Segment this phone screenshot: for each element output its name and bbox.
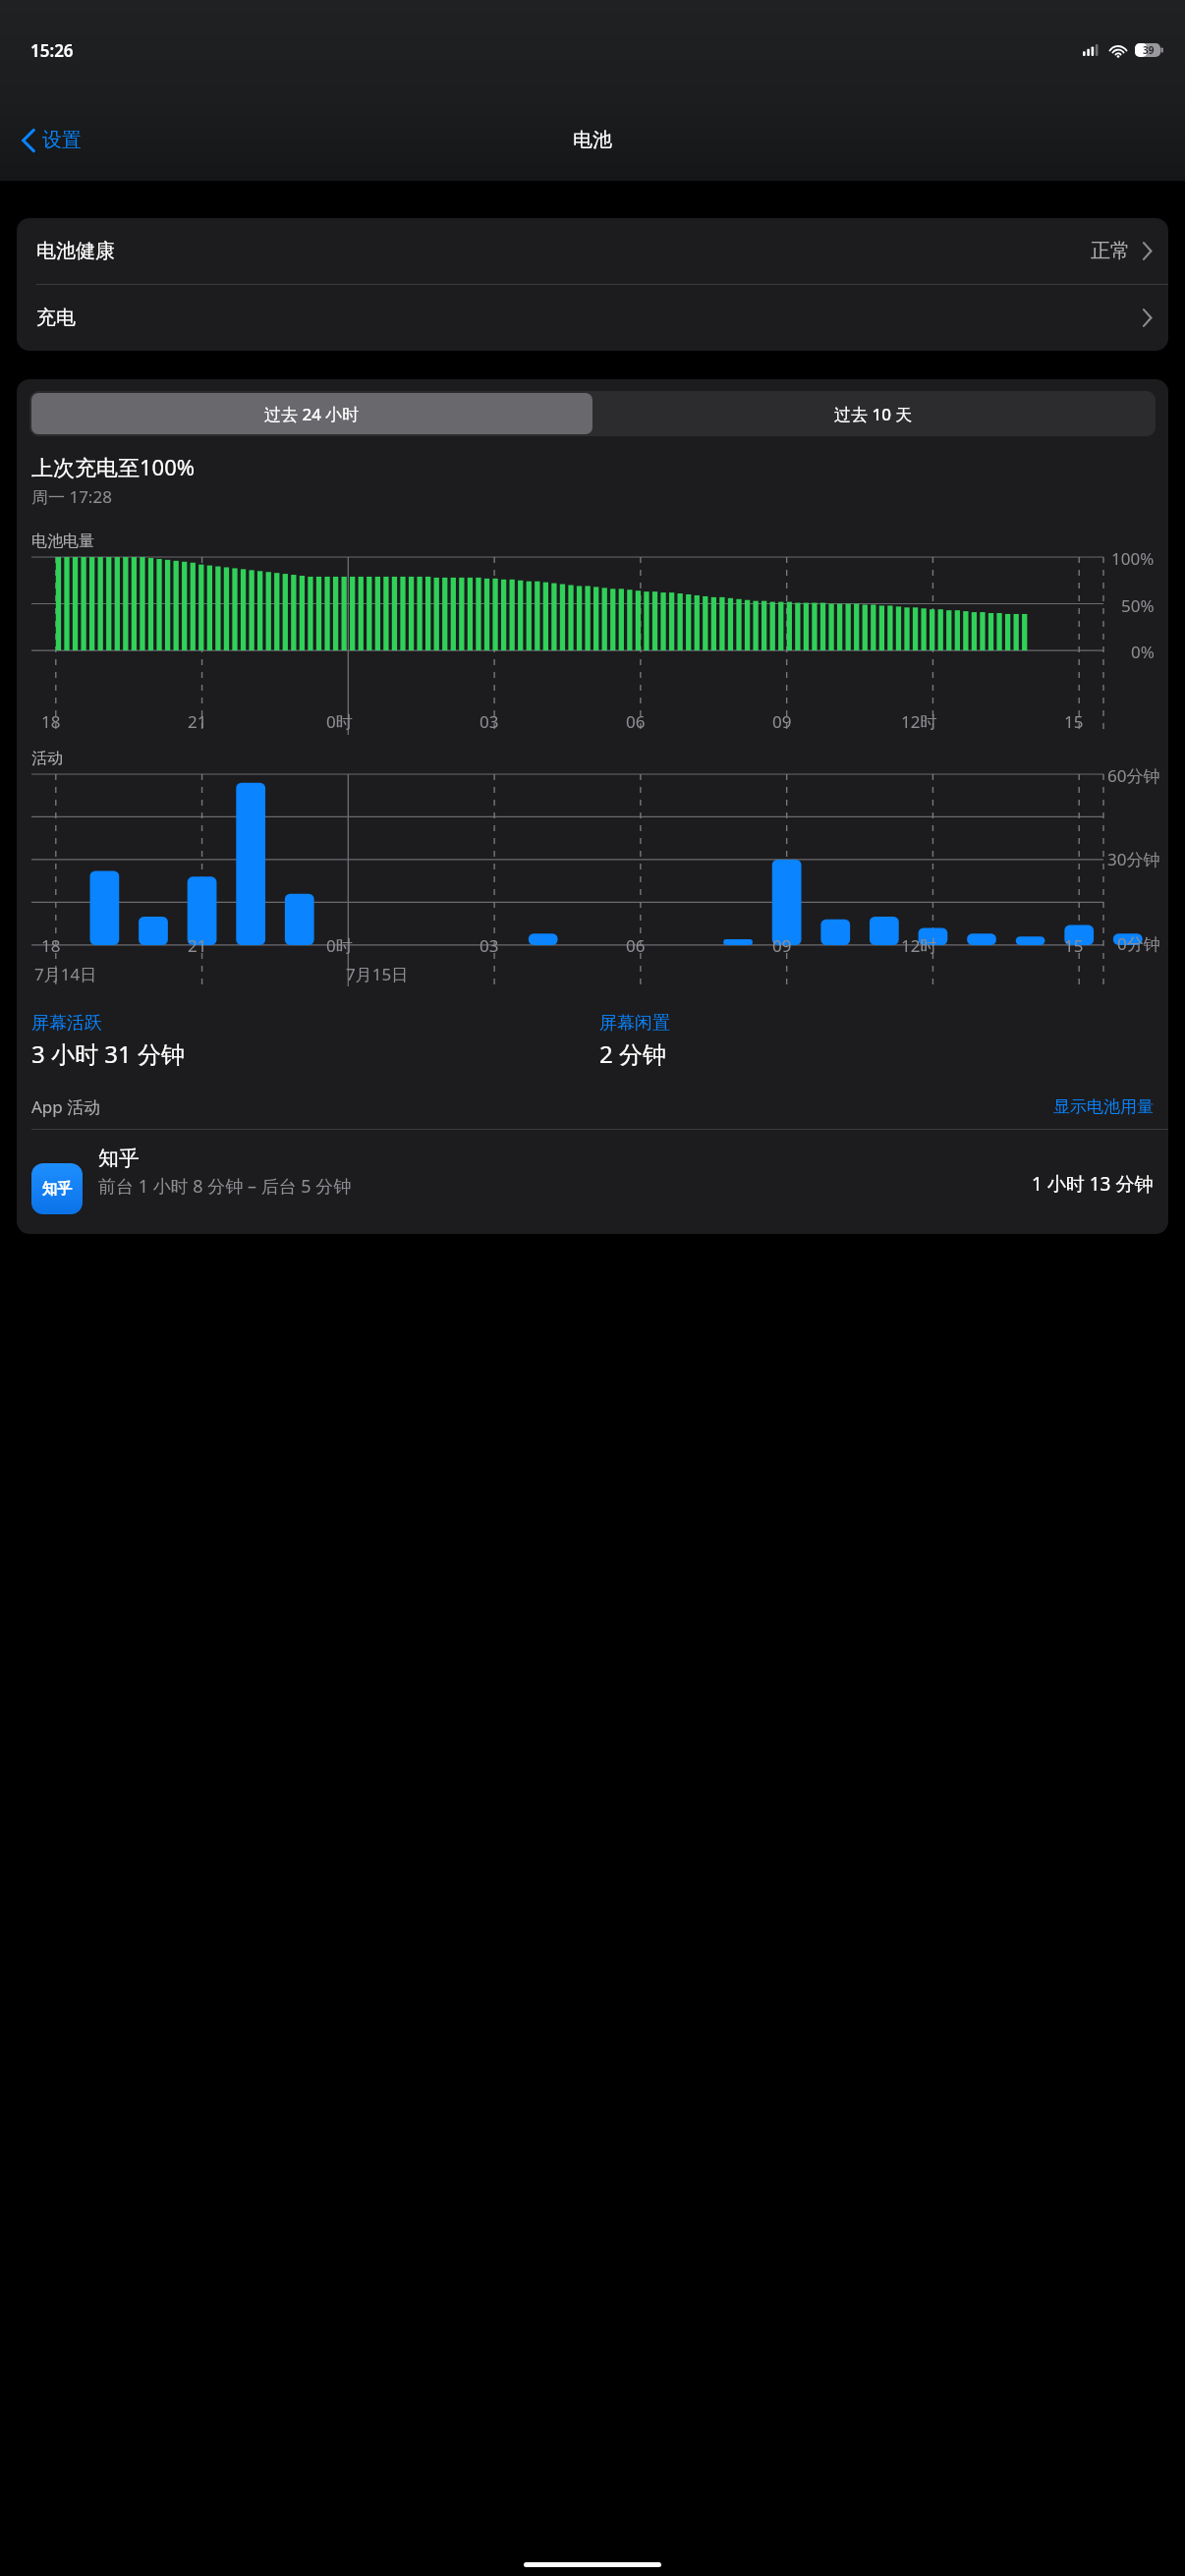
staticText: 3 小时 31 分钟: [31, 1037, 185, 1070]
staticText: 屏幕活跃: [31, 1012, 102, 1035]
staticText: 0%: [1131, 641, 1155, 663]
staticText: 知乎: [42, 1180, 72, 1199]
staticText: 前台 1 小时 8 分钟 – 后台 5 分钟: [98, 1174, 352, 1199]
staticText: 21: [188, 934, 207, 957]
staticText: 09: [772, 934, 792, 957]
staticText: 充电: [36, 306, 76, 330]
staticText: 06: [626, 934, 646, 957]
staticText: 过去 24 小时: [264, 403, 360, 425]
button[interactable]: 显示电池用量: [1053, 1096, 1154, 1117]
staticText: 电池健康: [36, 239, 115, 263]
staticText: 15: [1064, 710, 1084, 733]
staticText: 06: [626, 710, 646, 733]
staticText: 屏幕闲置: [599, 1012, 670, 1035]
staticText: 03: [480, 934, 499, 957]
staticText: 0时: [326, 710, 353, 733]
staticText: 7月14日: [34, 963, 97, 985]
button[interactable]: 过去 24 小时: [31, 393, 592, 434]
staticText: 0时: [326, 934, 353, 957]
staticText: 12时: [901, 934, 937, 957]
staticText: 过去 10 天: [834, 403, 913, 425]
staticText: 15:26: [30, 39, 74, 62]
staticText: 12时: [901, 710, 937, 733]
staticText: 21: [188, 710, 207, 733]
staticText: 50%: [1121, 594, 1155, 617]
staticText: 18: [41, 934, 61, 957]
button[interactable]: 电池健康: [17, 218, 1168, 284]
staticText: 09: [772, 710, 792, 733]
button[interactable]: 充电: [17, 285, 1168, 351]
button[interactable]: 知乎: [17, 1130, 1168, 1214]
staticText: App 活动: [31, 1095, 101, 1118]
staticText: 显示电池用量: [1053, 1096, 1154, 1117]
staticText: 03: [480, 710, 499, 733]
staticText: 30分钟: [1107, 848, 1160, 870]
staticText: 活动: [31, 749, 63, 768]
staticText: 2 分钟: [599, 1037, 666, 1070]
staticText: 正常: [1091, 239, 1130, 263]
staticText: 39: [1143, 43, 1155, 57]
staticText: 15: [1064, 934, 1084, 957]
staticText: 7月15日: [346, 963, 409, 985]
staticText: 上次充电至100%: [31, 452, 196, 481]
staticText: 60分钟: [1107, 764, 1160, 787]
staticText: 1 小时 13 分钟: [1032, 1171, 1154, 1197]
staticText: 100%: [1111, 547, 1155, 570]
staticText: 电池电量: [31, 532, 94, 551]
staticText: 电池: [573, 128, 612, 152]
button[interactable]: 设置: [14, 122, 89, 158]
staticText: 0分钟: [1117, 932, 1160, 955]
staticText: 设置: [42, 128, 82, 152]
staticText: 18: [41, 710, 61, 733]
button[interactable]: 过去 10 天: [592, 393, 1154, 434]
staticText: 周一 17:28: [31, 485, 112, 508]
staticText: 知乎: [98, 1146, 140, 1171]
